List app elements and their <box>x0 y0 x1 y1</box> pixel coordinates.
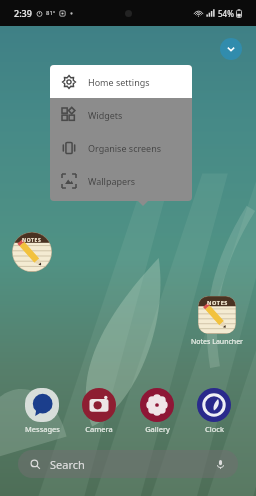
staticText: 54% <box>218 8 234 19</box>
staticText: Clock <box>205 424 224 434</box>
button[interactable]: Home settings <box>50 65 192 98</box>
staticText: Organise screens <box>88 142 162 154</box>
staticText: Home settings <box>88 76 150 88</box>
button[interactable]: Messages <box>17 388 67 434</box>
staticText: Messages <box>25 424 60 434</box>
button[interactable]: Widgets <box>50 98 192 131</box>
staticText: Gallery <box>145 424 170 434</box>
button[interactable]: Clock <box>189 388 239 434</box>
button[interactable]: NOTES <box>12 232 52 272</box>
button[interactable]: Organise screens <box>50 131 192 164</box>
staticText: 81° <box>46 9 56 17</box>
staticText: Wallpapers <box>88 175 136 187</box>
button[interactable]: NOTES <box>189 296 245 347</box>
staticText: NOTES <box>207 299 228 306</box>
staticText: Search <box>50 457 85 472</box>
button[interactable]: Wallpapers <box>50 164 192 197</box>
button[interactable]: Collapse <box>220 38 242 60</box>
staticText: Camera <box>85 424 113 434</box>
button[interactable]: Gallery <box>132 388 182 434</box>
staticText: Widgets <box>88 109 123 121</box>
button[interactable]: Search <box>18 450 238 478</box>
staticText: Notes Launcher <box>191 337 243 347</box>
staticText: NOTES <box>22 237 42 244</box>
staticText: 2:39 <box>14 7 32 19</box>
button[interactable]: Camera <box>74 388 124 434</box>
